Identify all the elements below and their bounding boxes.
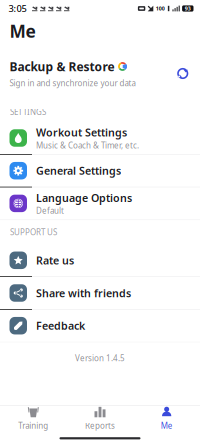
staticText: 93 xyxy=(185,5,191,12)
staticText: Me xyxy=(9,19,35,42)
button[interactable]: Rate us xyxy=(0,244,200,276)
button[interactable]: Workout Settings xyxy=(0,122,200,154)
staticText: Me xyxy=(161,420,173,431)
button[interactable]: Language Options xyxy=(0,187,200,219)
staticText: 100 xyxy=(156,5,165,12)
button[interactable]: Backup & Restore xyxy=(0,45,200,102)
staticText: SUPPORT US xyxy=(10,227,57,237)
staticText: Backup & Restore xyxy=(9,58,114,74)
staticText: SETTINGS xyxy=(10,107,46,117)
staticText: Feedback xyxy=(36,319,85,333)
staticText: Rate us xyxy=(36,253,74,267)
staticText: Default xyxy=(36,205,64,216)
staticText: 3:05 xyxy=(8,2,26,15)
staticText: Share with friends xyxy=(36,286,131,300)
staticText: General Settings xyxy=(36,164,121,178)
staticText: Version 1.4.5 xyxy=(75,353,125,363)
button[interactable]: Reports xyxy=(67,403,133,435)
button[interactable]: Training xyxy=(0,403,67,435)
button[interactable]: Feedback xyxy=(0,310,200,342)
staticText: Sign in and synchronize your data xyxy=(9,78,135,88)
staticText: Music & Coach & Timer, etc. xyxy=(36,140,139,151)
staticText: Reports xyxy=(85,420,115,431)
button[interactable]: Share with friends xyxy=(0,277,200,309)
button[interactable]: Me xyxy=(133,403,200,435)
staticText: Language Options xyxy=(36,191,132,205)
button[interactable]: General Settings xyxy=(0,155,200,187)
staticText: Training xyxy=(18,420,48,431)
staticText: Workout Settings xyxy=(36,125,127,140)
